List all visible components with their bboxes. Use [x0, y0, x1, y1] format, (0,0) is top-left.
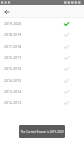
staticText: 2017-2018	[4, 44, 22, 49]
staticText: The Current Season is 2019-2020	[19, 130, 65, 134]
button[interactable]: 2017-2018	[0, 41, 84, 52]
button[interactable]: 2014-2015	[0, 75, 84, 86]
button[interactable]: 2013-2014	[0, 86, 84, 97]
staticText: 2013-2014	[4, 89, 22, 94]
button[interactable]: The Current Season is 2019-2020	[19, 125, 65, 138]
staticText: 2015-2016	[4, 66, 22, 71]
staticText: 2019-2020	[4, 21, 22, 26]
staticText: 2018-2019	[4, 32, 22, 37]
button[interactable]: 2016-2017	[0, 52, 84, 63]
button[interactable]: 2015-2016	[0, 63, 84, 74]
button[interactable]: 2018-2019	[0, 29, 84, 40]
staticText: 2014-2015	[4, 78, 22, 83]
staticText: 2012-2013	[4, 100, 22, 105]
button[interactable]: Back	[2, 7, 11, 16]
button[interactable]: 2012-2013	[0, 97, 84, 108]
staticText: 2016-2017	[4, 55, 22, 60]
button[interactable]: 2019-2020	[0, 18, 84, 29]
